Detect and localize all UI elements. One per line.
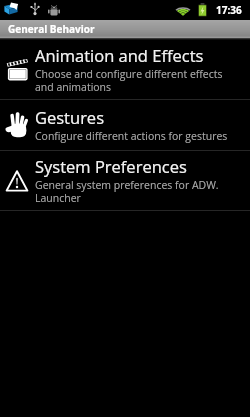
staticText: 17:36	[216, 3, 242, 17]
button[interactable]: Gestures	[0, 100, 250, 150]
button[interactable]: Animation and Effects	[0, 40, 250, 99]
button[interactable]: System Preferences	[0, 151, 250, 210]
staticText: Configure different actions for gestures	[35, 129, 228, 143]
button[interactable]: General Behavior	[0, 20, 250, 38]
staticText: Gestures	[35, 106, 104, 128]
staticText: System Preferences	[35, 155, 187, 177]
staticText: General system preferences for ADW. Laun…	[35, 178, 235, 205]
staticText: Choose and configure different effects a…	[35, 67, 235, 94]
staticText: General Behavior	[8, 22, 95, 36]
staticText: Animation and Effects	[35, 44, 204, 66]
